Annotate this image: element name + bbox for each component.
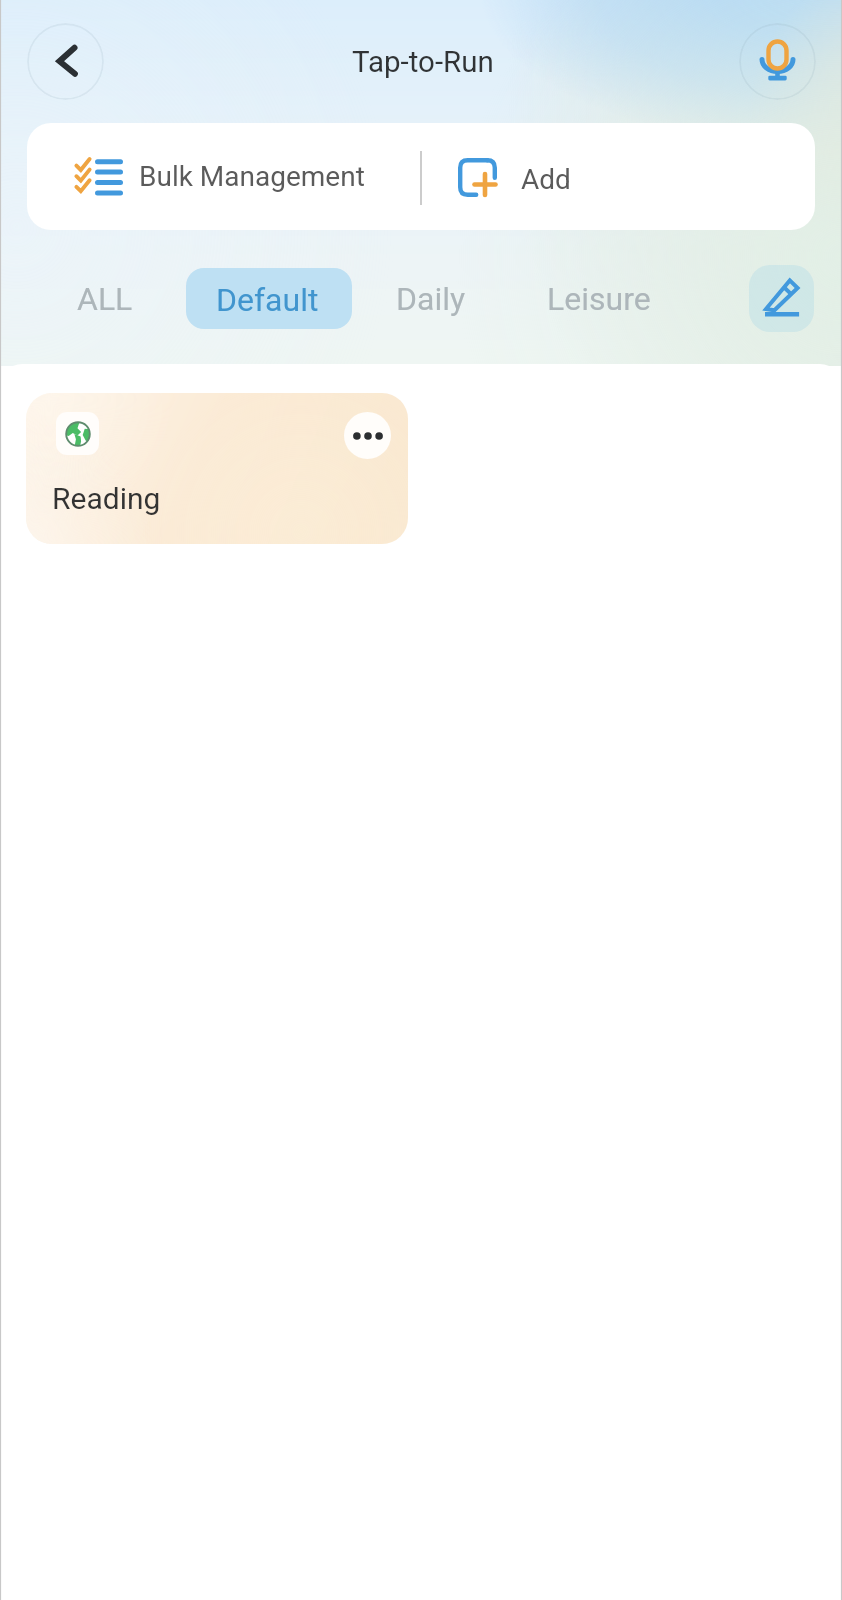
- button[interactable]: Voice input: [739, 23, 816, 100]
- staticText: Bulk Management: [139, 160, 365, 193]
- staticText: ALL: [77, 280, 133, 318]
- button[interactable]: Edit: [749, 265, 814, 332]
- button[interactable]: Default: [186, 268, 352, 329]
- button[interactable]: ALL: [53, 266, 157, 332]
- staticText: Add: [521, 163, 571, 196]
- staticText: Default: [216, 281, 319, 319]
- button[interactable]: Back: [27, 23, 104, 100]
- staticText: Tap-to-Run: [352, 45, 494, 80]
- staticText: Reading: [52, 481, 161, 516]
- button[interactable]: Add: [422, 123, 815, 230]
- button[interactable]: More options: [26, 393, 408, 544]
- button[interactable]: Bulk Management: [27, 123, 421, 230]
- staticText: Daily: [396, 280, 466, 318]
- staticText: Leisure: [547, 280, 651, 318]
- button[interactable]: More options: [344, 412, 391, 459]
- button[interactable]: Leisure: [523, 266, 675, 332]
- button[interactable]: Daily: [372, 266, 490, 332]
